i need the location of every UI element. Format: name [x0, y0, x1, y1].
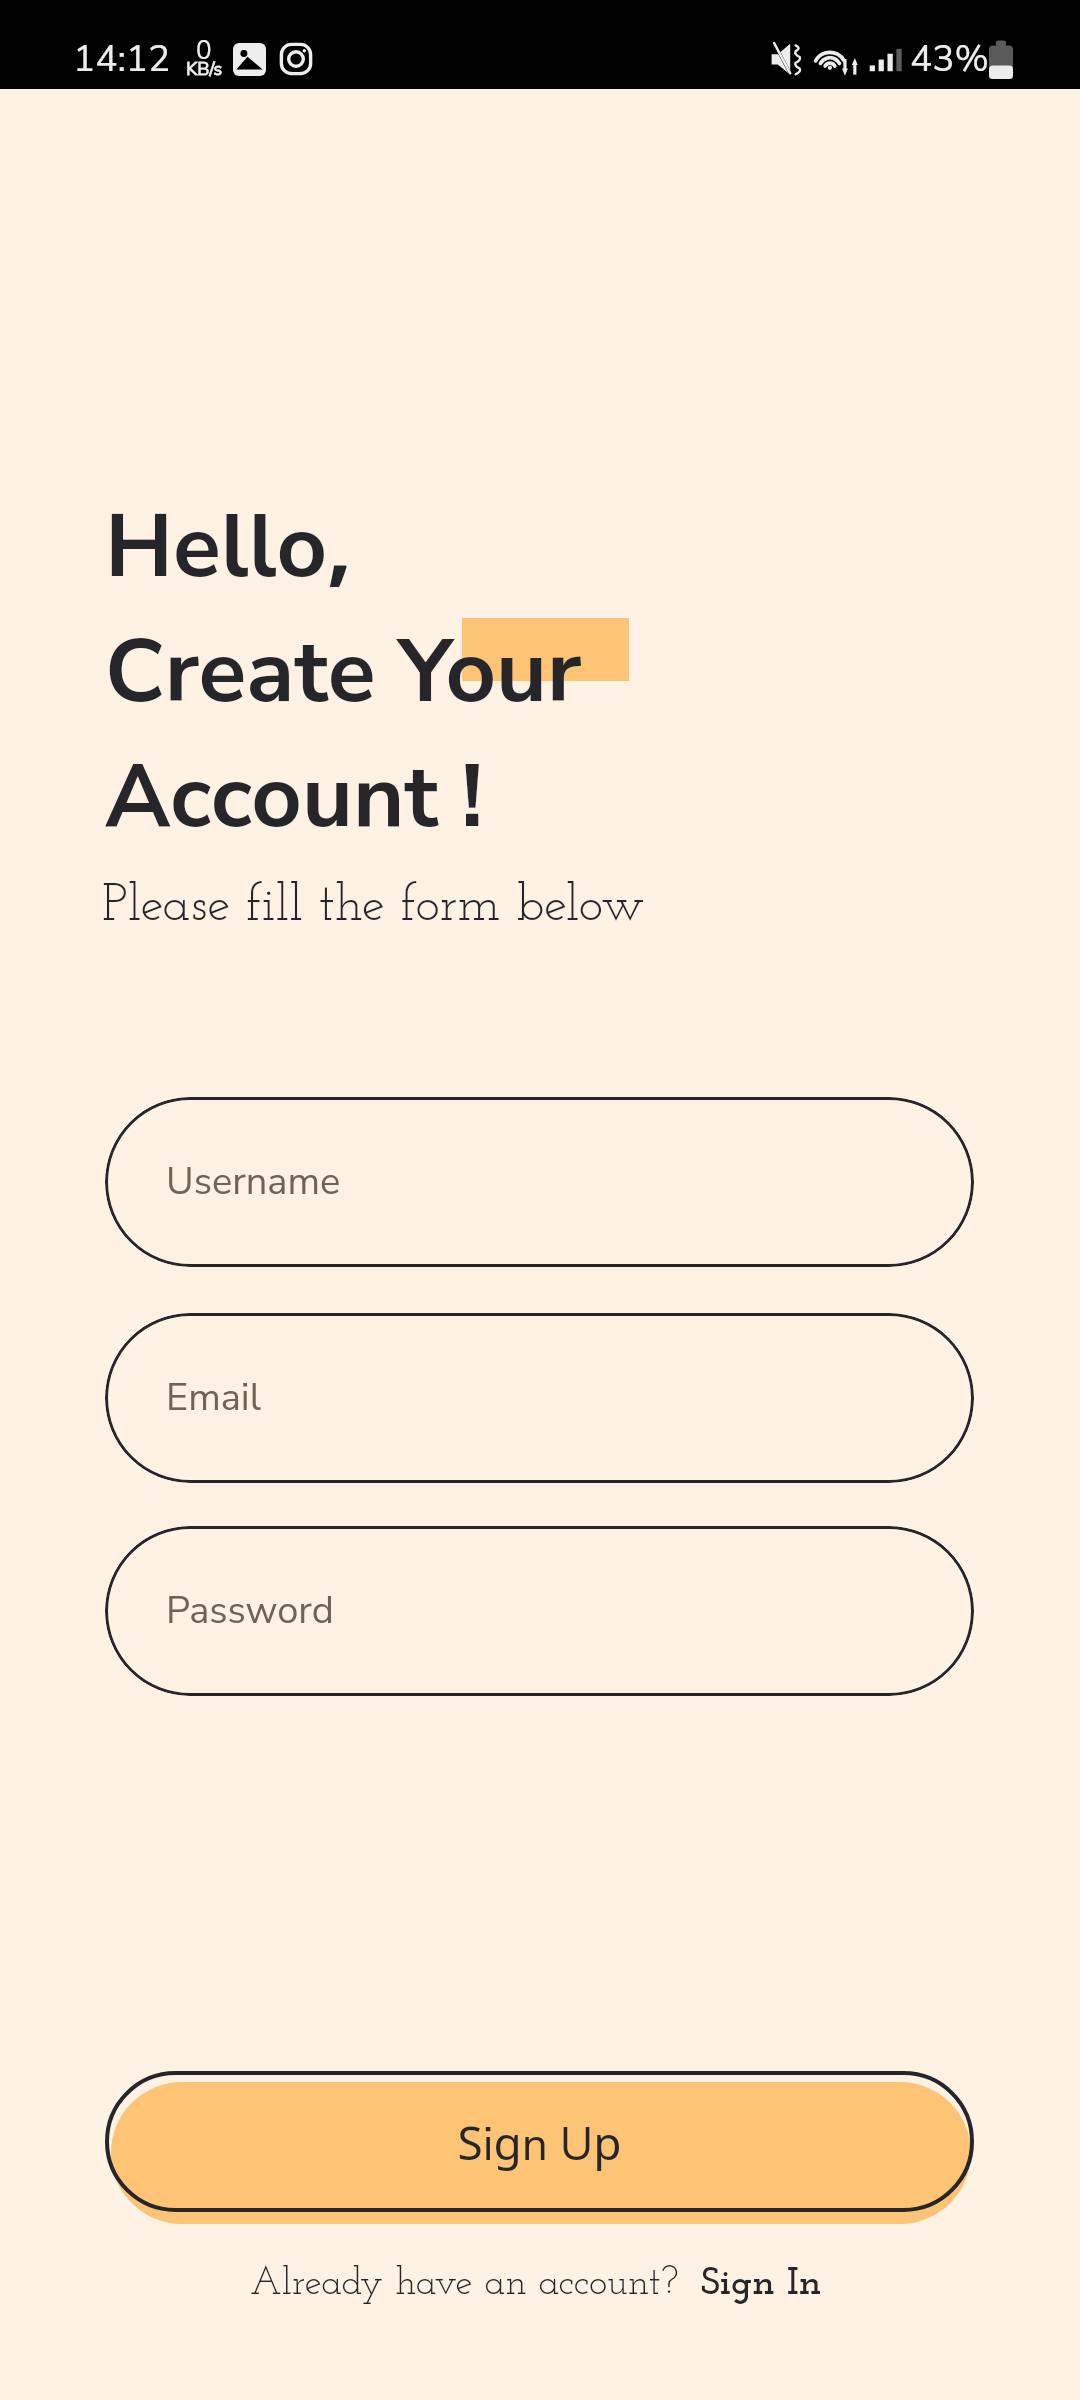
staticText: 14:12 [73, 34, 171, 84]
button[interactable]: Sign Up [105, 2071, 977, 2226]
button[interactable]: Email [105, 1313, 974, 1483]
other: Ringer muted [771, 42, 802, 76]
other: Wi-Fi [813, 42, 860, 76]
staticText: 43% [910, 34, 989, 84]
button[interactable]: Username [105, 1097, 974, 1267]
other: Mobile signal [869, 42, 902, 76]
staticText: 0 [196, 33, 212, 68]
button[interactable]: Sign In [701, 2265, 822, 2304]
staticText: KB/s [186, 57, 223, 82]
other: Battery 43 percent [989, 39, 1013, 79]
staticText: Username [166, 1156, 341, 1208]
other: Instagram [279, 42, 313, 76]
button[interactable]: Password [105, 1526, 974, 1696]
staticText: Sign In [701, 2265, 822, 2304]
staticText: Hello, [105, 482, 353, 607]
staticText: Create Your [105, 607, 582, 732]
staticText: Please fill the form below [102, 881, 645, 933]
other: Screenshot [233, 43, 266, 76]
staticText: Already have an account? [250, 2265, 679, 2304]
staticText: Account ! [105, 732, 483, 857]
staticText: Password [166, 1585, 334, 1637]
staticText: Email [166, 1372, 261, 1424]
staticText: Sign Up [457, 2111, 622, 2176]
